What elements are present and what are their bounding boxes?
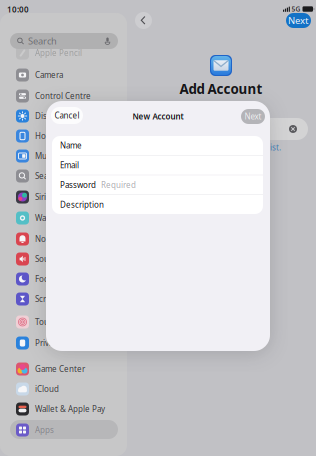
- staticText: list.: [268, 142, 281, 153]
- staticText: Next: [244, 111, 261, 122]
- staticText: iCloud: [35, 384, 59, 394]
- staticText: Game Center: [35, 364, 85, 374]
- staticText: Multitasking & Gestures: [35, 151, 115, 161]
- staticText: Add Account: [179, 80, 262, 98]
- staticText: Touch ID & Passcode: [35, 317, 115, 327]
- staticText: Wallet & Apple Pay: [35, 404, 105, 414]
- staticText: Home Screen & App Library: [35, 131, 115, 141]
- button[interactable]: Next: [286, 13, 311, 28]
- staticText: Camera: [35, 70, 63, 80]
- staticText: Display & Brightness: [35, 111, 113, 121]
- staticText: Siri: [35, 192, 46, 202]
- button[interactable]: Email: [52, 155, 263, 175]
- staticText: Sounds: [35, 254, 63, 264]
- staticText: Description: [60, 199, 104, 210]
- button[interactable]: Next: [241, 109, 265, 124]
- staticText: Search: [35, 171, 60, 181]
- staticText: Password: [60, 179, 96, 190]
- staticText: 5G: [291, 5, 300, 13]
- button[interactable]: Back: [135, 12, 152, 29]
- staticText: Required: [101, 179, 136, 190]
- staticText: Focus: [35, 274, 57, 284]
- staticText: 10:00: [7, 4, 29, 15]
- staticText: Control Centre: [35, 91, 91, 101]
- staticText: Privacy & Security: [35, 338, 101, 348]
- button[interactable]: Cancel: [51, 107, 83, 124]
- staticText: Apple Pencil: [35, 48, 82, 58]
- staticText: Name: [60, 140, 82, 151]
- staticText: Search: [28, 35, 57, 47]
- staticText: Next: [288, 14, 309, 27]
- button[interactable]: Description: [52, 195, 263, 214]
- staticText: Apps: [35, 425, 54, 435]
- staticText: Screen Time: [35, 294, 81, 304]
- button[interactable]: Name: [52, 136, 263, 155]
- staticText: Wallpaper: [35, 213, 72, 223]
- staticText: Notifications: [35, 234, 83, 244]
- staticText: New Account: [132, 111, 183, 122]
- staticText: Email: [60, 160, 79, 170]
- staticText: Cancel: [54, 110, 79, 121]
- button[interactable]: Password: [52, 175, 263, 194]
